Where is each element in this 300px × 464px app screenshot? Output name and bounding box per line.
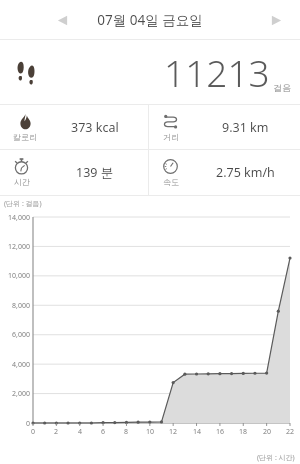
staticText: 14,000 (0, 213, 30, 223)
staticText: 6,000 (0, 330, 30, 340)
staticText: 10 (140, 427, 160, 437)
staticText: 11213 (164, 47, 270, 97)
staticText: 칼로리 (13, 132, 37, 142)
button[interactable]: 칼로리 (0, 105, 148, 149)
staticText: 20 (257, 427, 277, 437)
staticText: (단위 : 시간) (257, 453, 295, 463)
staticText: 속도 (163, 177, 179, 187)
staticText: 9.31 km (222, 119, 269, 136)
button[interactable]: 속도 (149, 150, 300, 195)
staticText: 2.75 km/h (216, 164, 275, 181)
staticText: 10,000 (0, 271, 30, 281)
staticText: 8,000 (0, 301, 30, 311)
staticText: 0 (0, 419, 30, 429)
staticText: 6 (93, 427, 113, 437)
staticText: 4,000 (0, 360, 30, 370)
button[interactable]: Previous day (48, 6, 76, 34)
staticText: 139 분 (76, 164, 114, 181)
staticText: 12,000 (0, 242, 30, 252)
staticText: 4 (70, 427, 90, 437)
staticText: 2,000 (0, 389, 30, 399)
staticText: 18 (233, 427, 253, 437)
staticText: 걸음 (273, 82, 291, 93)
button[interactable]: 시간 (0, 150, 148, 195)
staticText: 16 (210, 427, 230, 437)
button[interactable]: Next day (262, 6, 290, 34)
staticText: 시간 (14, 177, 30, 187)
staticText: (단위 : 걸음) (4, 199, 42, 209)
staticText: 12 (163, 427, 183, 437)
staticText: 2 (46, 427, 66, 437)
staticText: 373 kcal (71, 119, 119, 136)
button[interactable]: 11213 (0, 40, 300, 104)
button[interactable]: 거리 (149, 105, 300, 149)
staticText: 거리 (163, 132, 179, 142)
staticText: 07월 04일 금요일 (97, 11, 203, 29)
staticText: 14 (187, 427, 207, 437)
staticText: 8 (116, 427, 136, 437)
staticText: 22 (280, 427, 300, 437)
staticText: 0 (23, 427, 43, 437)
